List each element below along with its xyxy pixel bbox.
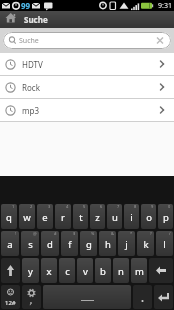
staticText: i [130, 211, 133, 224]
staticText: y [28, 265, 33, 278]
staticText: d [47, 238, 53, 251]
staticText: f [68, 238, 72, 251]
staticText: x [46, 265, 52, 278]
staticText: h [105, 238, 111, 251]
staticText: 6 [100, 204, 103, 209]
button[interactable]: t [73, 204, 88, 229]
button[interactable]: x [41, 258, 57, 283]
staticText: r [61, 211, 65, 224]
button[interactable]: d [41, 231, 59, 256]
staticText: mp3 [22, 105, 39, 116]
button[interactable]: Suche [0, 11, 174, 28]
button[interactable] [1, 258, 20, 283]
staticText: p [163, 211, 169, 224]
staticText: 8 [134, 204, 137, 209]
button[interactable]: f [61, 231, 78, 256]
button[interactable]: o [141, 204, 156, 229]
button[interactable]: Suche [3, 32, 171, 49]
button[interactable]: k [137, 231, 154, 256]
staticText: z [95, 211, 100, 224]
button[interactable]: n [113, 258, 129, 283]
button[interactable]: HDTV [0, 53, 174, 75]
button[interactable]: l [156, 231, 173, 256]
staticText: 2 [30, 204, 33, 209]
staticText: s [28, 238, 33, 251]
staticText: 0 [168, 204, 171, 209]
staticText: ! [15, 231, 17, 236]
staticText: m [135, 265, 144, 278]
button[interactable]: Rock [0, 76, 174, 98]
button[interactable] [43, 285, 131, 309]
staticText: 3 [48, 204, 51, 209]
staticText: 1 [12, 204, 15, 209]
button[interactable]: z [90, 204, 105, 229]
staticText: Rock [22, 82, 40, 93]
staticText: o [146, 211, 152, 224]
button[interactable] [133, 285, 152, 309]
staticText: n [118, 265, 124, 278]
button[interactable]: 12# [1, 285, 20, 309]
button[interactable]: v [77, 258, 93, 283]
staticText: & [111, 231, 114, 236]
button[interactable] [149, 258, 173, 283]
button[interactable] [22, 285, 41, 309]
button[interactable]: e [37, 204, 53, 229]
staticText: # [54, 231, 57, 236]
button[interactable]: r [55, 204, 71, 229]
staticText: e [42, 211, 48, 224]
staticText: * [130, 231, 133, 236]
button[interactable]: c [59, 258, 75, 283]
button[interactable]: w [19, 204, 35, 229]
staticText: g [86, 238, 92, 251]
staticText: a [7, 238, 13, 251]
staticText: 9 [151, 204, 154, 209]
staticText: 12# [5, 299, 16, 307]
button[interactable]: u [107, 204, 122, 229]
staticText: / [169, 231, 171, 236]
button[interactable]: p [158, 204, 173, 229]
staticText: $ [73, 231, 76, 236]
staticText: c [65, 265, 70, 278]
staticText: q [6, 211, 12, 224]
button[interactable]: h [99, 231, 116, 256]
staticText: j [125, 238, 128, 251]
staticText: ? [150, 231, 152, 236]
button[interactable] [154, 285, 173, 309]
button[interactable]: mp3 [0, 99, 174, 121]
button[interactable]: q [1, 204, 17, 229]
staticText: 9:31 [158, 1, 172, 11]
button[interactable]: a [1, 231, 19, 256]
button[interactable]: b [95, 258, 111, 283]
staticText: t [79, 211, 83, 224]
staticText: k [143, 238, 149, 251]
button[interactable]: g [80, 231, 97, 256]
staticText: Suche [24, 14, 48, 25]
staticText: Suche [19, 36, 39, 46]
staticText: b [100, 265, 106, 278]
staticText: 7 [117, 204, 120, 209]
staticText: l [163, 238, 166, 251]
staticText: HDTV [22, 59, 43, 70]
staticText: 99 [21, 0, 31, 11]
staticText: v [83, 265, 88, 278]
button[interactable]: i [124, 204, 139, 229]
staticText: 4 [66, 204, 69, 209]
button[interactable]: j [118, 231, 135, 256]
button[interactable]: s [21, 231, 39, 256]
staticText: u [112, 211, 118, 224]
staticText: % [91, 231, 95, 236]
staticText: w [23, 211, 31, 224]
staticText: 5 [83, 204, 86, 209]
staticText: @ [33, 231, 37, 236]
button[interactable]: y [22, 258, 39, 283]
button[interactable]: m [131, 258, 147, 283]
